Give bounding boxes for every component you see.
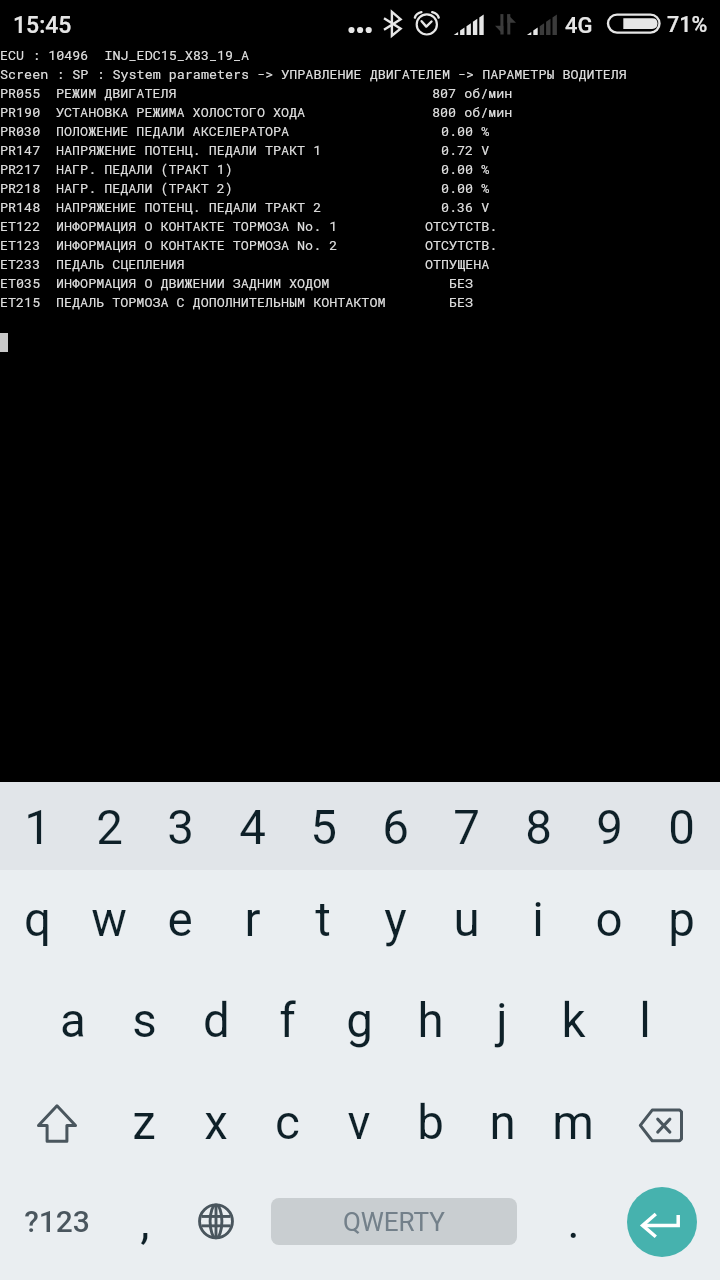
button[interactable]: 3 [144,784,216,872]
button[interactable]: 8 [502,784,574,872]
button[interactable]: k [537,970,609,1071]
button[interactable]: Shift [21,1073,93,1174]
button[interactable]: Enter [627,1187,697,1257]
staticText: НАПРЯЖЕНИЕ ПОТЕНЦ. ПЕДАЛИ ТРАКТ 2 [56,198,322,216]
button[interactable]: l [609,970,681,1071]
staticText: , [140,1194,150,1250]
button[interactable]: 5 [287,784,359,872]
staticText: 0.00 % [441,122,490,140]
button[interactable]: j [466,970,538,1071]
button[interactable]: , [115,1171,175,1272]
staticText: u [453,892,480,948]
staticText: БЕЗ [449,274,474,292]
staticText: ОТПУЩЕНА [425,255,490,273]
staticText: v [347,1095,371,1151]
staticText: УСТАНОВКА РЕЖИМА ХОЛОСТОГО ХОДА [56,103,306,121]
staticText: ПОЛОЖЕНИЕ ПЕДАЛИ АКСЕЛЕРАТОРА [56,122,290,140]
button[interactable]: h [394,970,466,1071]
button[interactable]: r [216,869,288,970]
staticText: p [668,892,695,948]
button[interactable]: . [543,1171,603,1272]
staticText: 4 [239,800,266,856]
staticText: НАГР. ПЕДАЛИ (ТРАКТ 1) [56,160,233,178]
staticText: o [595,892,623,948]
staticText: 0.00 % [441,160,490,178]
staticText: 800 об/мин [432,103,513,121]
staticText: 71% [667,12,708,37]
button[interactable]: ?123 [2,1171,112,1272]
button[interactable]: b [394,1072,466,1173]
staticText: PR218 [0,179,41,197]
button[interactable]: o [573,869,645,970]
staticText: f [279,993,296,1049]
staticText: s [132,993,157,1049]
button[interactable]: m [537,1072,609,1173]
button[interactable]: a [37,970,109,1071]
button[interactable]: p [645,869,717,970]
staticText: k [561,993,586,1049]
staticText: ПЕДАЛЬ СЦЕПЛЕНИЯ [56,255,185,273]
button[interactable]: QWERTY [271,1198,517,1245]
staticText: w [91,892,127,948]
staticText: d [203,993,230,1049]
button[interactable]: t [287,869,359,970]
staticText: PR147 [0,141,41,159]
staticText: q [24,892,51,948]
staticText: 2 [96,800,123,856]
staticText: h [417,993,444,1049]
staticText: PR055 [0,84,41,102]
staticText: 5 [310,800,337,856]
staticText: 0.72 V [441,141,490,159]
button[interactable]: q [1,869,73,970]
staticText: 9 [596,800,623,856]
button[interactable]: n [466,1072,538,1173]
button[interactable]: g [323,970,395,1071]
button[interactable]: v [323,1072,395,1173]
button[interactable]: y [359,869,431,970]
staticText: ECU : 10496 INJ_EDC15_X83_19_A [0,46,250,64]
staticText: g [346,993,373,1049]
staticText: j [496,993,508,1049]
staticText: БЕЗ [449,293,474,311]
button[interactable]: s [108,970,180,1071]
button[interactable]: f [251,970,323,1071]
staticText: x [204,1095,228,1151]
staticText: ОТСУТСТВ. [425,217,498,235]
staticText: b [417,1095,444,1151]
button[interactable]: 4 [216,784,288,872]
staticText: QWERTY [343,1207,445,1237]
staticText: PR190 [0,103,41,121]
button[interactable]: 0 [645,784,717,872]
button[interactable]: c [251,1072,323,1173]
button[interactable]: i [502,869,574,970]
staticText: ИНФОРМАЦИЯ О КОНТАКТЕ ТОРМОЗА No. 2 [56,236,338,254]
staticText: ИНФОРМАЦИЯ О КОНТАКТЕ ТОРМОЗА No. 1 [56,217,338,235]
button[interactable]: 6 [359,784,431,872]
button[interactable]: 2 [73,784,145,872]
staticText: 4G [565,13,593,39]
button[interactable]: 1 [1,784,73,872]
staticText: i [532,892,544,948]
button[interactable]: Backspace [625,1075,697,1176]
staticText: НАПРЯЖЕНИЕ ПОТЕНЦ. ПЕДАЛИ ТРАКТ 1 [56,141,322,159]
staticText: ET122 [0,217,41,235]
button[interactable]: u [430,869,502,970]
staticText: ET123 [0,236,41,254]
button[interactable]: d [180,970,252,1071]
staticText: 7 [453,800,480,856]
staticText: 0.36 V [441,198,490,216]
staticText: 8 [525,800,552,856]
button[interactable]: z [108,1072,180,1173]
button[interactable]: e [144,869,216,970]
staticText: РЕЖИМ ДВИГАТЕЛЯ [56,84,177,102]
button[interactable]: 9 [573,784,645,872]
staticText: 807 об/мин [432,84,513,102]
staticText: c [275,1095,300,1151]
staticText: ИНФОРМАЦИЯ О ДВИЖЕНИИ ЗАДНИМ ХОДОМ [56,274,330,292]
button[interactable]: x [180,1072,252,1173]
button[interactable]: w [73,869,145,970]
staticText: e [167,892,193,948]
button[interactable]: Change keyboard language [180,1171,252,1272]
staticText: PR217 [0,160,41,178]
button[interactable]: 7 [430,784,502,872]
